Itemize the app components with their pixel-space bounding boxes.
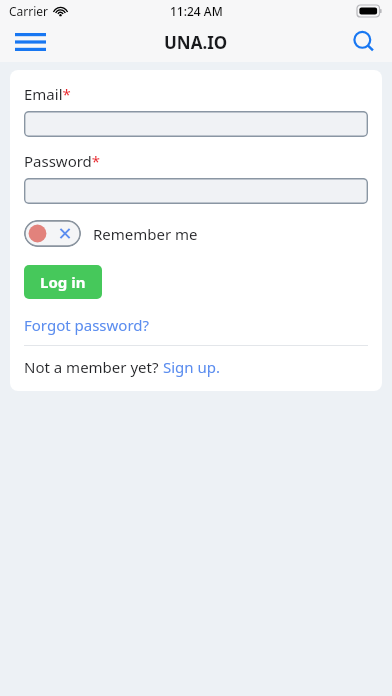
button[interactable]: Remember me toggle <box>24 220 81 247</box>
button[interactable] <box>24 111 368 137</box>
button[interactable]: Search <box>346 24 382 60</box>
staticText: UNA.IO <box>164 31 228 54</box>
staticText: Carrier <box>9 3 49 19</box>
button[interactable] <box>24 178 368 204</box>
staticText: Not a member yet? <box>24 357 163 377</box>
button[interactable]: Sign up. <box>163 357 221 377</box>
button[interactable]: Forgot password? <box>24 315 150 335</box>
staticText: Log in <box>40 272 86 292</box>
staticText: Password* <box>24 151 101 171</box>
button[interactable]: Log in <box>24 265 102 299</box>
staticText: Remember me <box>93 224 198 244</box>
staticText: Email* <box>24 84 71 104</box>
staticText: Sign up. <box>163 357 221 377</box>
staticText: Forgot password? <box>24 315 150 335</box>
staticText: 11:24 AM <box>170 3 223 19</box>
button[interactable]: Menu <box>10 25 50 59</box>
